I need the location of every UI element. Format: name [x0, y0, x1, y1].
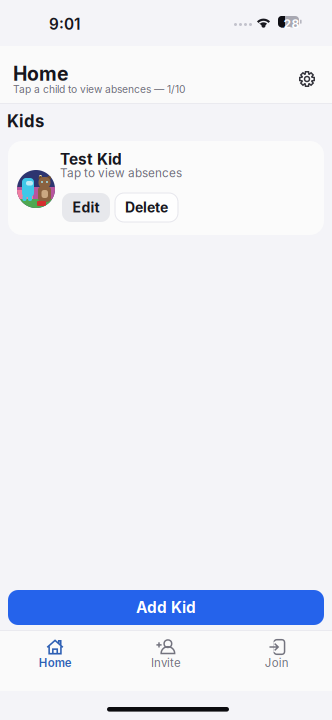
staticText: Home — [39, 656, 72, 670]
button[interactable]: Join — [221, 631, 332, 678]
staticText: Delete — [125, 199, 168, 216]
staticText: Tap a child to view absences — 1/10 — [13, 83, 185, 95]
staticText: Invite — [151, 656, 181, 670]
staticText: Join — [265, 656, 289, 670]
button[interactable]: Settings — [291, 63, 323, 95]
button[interactable]: Add Kid — [8, 590, 324, 625]
button[interactable]: Edit — [62, 193, 110, 222]
staticText: Edit — [72, 199, 99, 216]
button[interactable]: Home — [0, 631, 111, 678]
staticText: Tap to view absences — [60, 166, 182, 180]
button[interactable]: Delete — [115, 193, 178, 222]
staticText: Test Kid — [60, 150, 122, 169]
staticText: 9:01 — [49, 15, 80, 34]
staticText: Kids — [7, 111, 44, 131]
staticText: 28 — [283, 17, 299, 31]
button[interactable]: Invite — [111, 631, 221, 678]
staticText: Add Kid — [136, 598, 196, 617]
staticText: Home — [13, 62, 68, 85]
